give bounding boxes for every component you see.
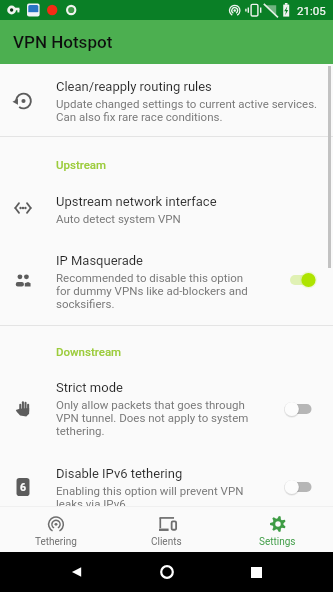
- staticText: Only allow packets that goes through VPN…: [56, 398, 256, 437]
- staticText: 6: [20, 481, 27, 493]
- staticText: Clean/reapply routing rules: [56, 79, 212, 94]
- staticText: Update changed settings to current activ…: [56, 97, 321, 123]
- button[interactable]: Strict mode: [0, 368, 333, 452]
- staticText: Disable IPv6 tethering: [56, 466, 183, 481]
- staticText: Settings: [259, 536, 296, 548]
- button[interactable]: 6: [0, 454, 333, 507]
- button[interactable]: Tethering: [0, 507, 111, 552]
- button[interactable]: Upstream network interface: [0, 181, 333, 232]
- button[interactable]: Settings: [222, 507, 333, 552]
- staticText: Tethering: [35, 536, 77, 548]
- button[interactable]: Recents: [243, 559, 269, 585]
- staticText: Auto detect system VPN: [56, 212, 181, 225]
- staticText: Enabling this option will prevent VPN le…: [56, 484, 256, 510]
- staticText: Upstream network interface: [56, 194, 217, 209]
- button[interactable]: Clients: [111, 507, 222, 552]
- staticText: VPN Hotspot: [13, 32, 113, 52]
- staticText: Downstream: [56, 345, 122, 358]
- staticText: Upstream: [56, 158, 107, 171]
- button[interactable]: Back: [64, 559, 90, 585]
- staticText: Strict mode: [56, 380, 123, 395]
- button[interactable]: IP Masquerade: [0, 240, 333, 324]
- staticText: IP Masquerade: [56, 253, 143, 268]
- staticText: Recommended to disable this option for d…: [56, 271, 256, 310]
- button[interactable]: Clean/reapply routing rules: [0, 64, 333, 136]
- staticText: Clients: [151, 536, 182, 548]
- staticText: 21:05: [297, 4, 326, 17]
- button[interactable]: Home: [154, 559, 180, 585]
